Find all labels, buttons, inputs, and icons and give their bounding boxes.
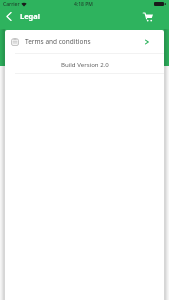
staticText: Build Version 2.0 [61,60,109,68]
button[interactable]: Terms and conditions [5,30,164,53]
button[interactable]: Shopping cart [138,8,158,25]
button[interactable]: Back [0,8,17,25]
staticText: Terms and conditions [25,37,91,46]
staticText: 4:18 PM [74,1,93,8]
staticText: Legal [20,11,40,21]
staticText: Carrier [3,1,20,8]
